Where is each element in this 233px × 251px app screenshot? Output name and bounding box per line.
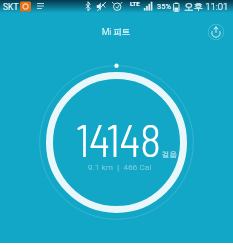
staticText: Mi 피트 (102, 27, 131, 38)
staticText: 35% (157, 2, 171, 11)
staticText: 9.1 km | 466 Cal (88, 163, 152, 172)
button[interactable]: Sync (205, 21, 227, 43)
staticText: LTE (130, 0, 140, 7)
staticText: 오후 11:01 (184, 1, 229, 13)
staticText: 14148 (76, 112, 161, 166)
staticText: SKT (3, 2, 19, 12)
staticText: 걸음 (162, 150, 177, 159)
